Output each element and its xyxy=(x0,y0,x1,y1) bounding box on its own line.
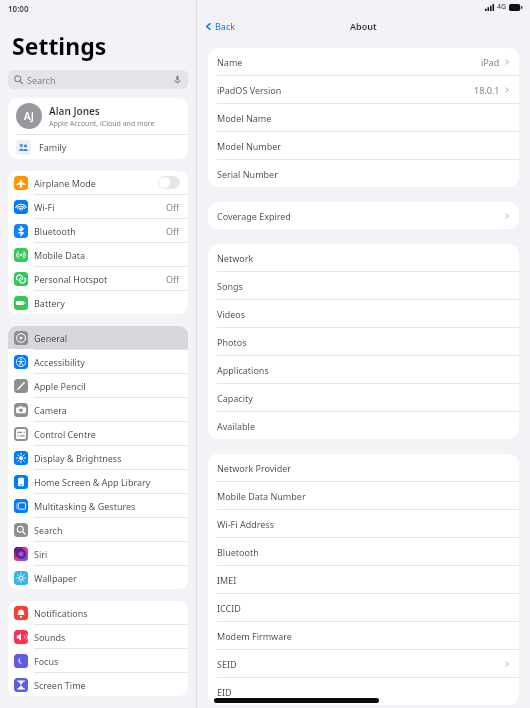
staticText: IMEI xyxy=(217,574,237,586)
staticText: Apple Account, iCloud and more xyxy=(49,119,155,129)
staticText: Model Name xyxy=(217,112,272,124)
staticText: 10:00 xyxy=(8,3,29,14)
staticText: Bluetooth xyxy=(34,225,76,237)
button[interactable]: Name xyxy=(208,48,519,75)
button[interactable]: Display & Brightness xyxy=(8,446,188,469)
button[interactable]: Mobile Data Number xyxy=(208,482,519,509)
staticText: iPad xyxy=(481,56,500,68)
button[interactable]: Wi-Fi Address xyxy=(208,510,519,537)
button[interactable]: Screen Time xyxy=(8,673,188,696)
staticText: Available xyxy=(217,420,255,432)
button[interactable]: Wi-Fi xyxy=(8,195,188,218)
staticText: Videos xyxy=(217,308,246,320)
staticText: Back xyxy=(215,20,236,32)
staticText: Model Number xyxy=(217,140,282,152)
button[interactable]: Battery xyxy=(8,291,188,314)
staticText: Wi-Fi xyxy=(34,201,55,213)
staticText: SEID xyxy=(217,658,237,670)
button[interactable]: Wallpaper xyxy=(8,566,188,589)
staticText: Focus xyxy=(34,655,59,667)
staticText: Camera xyxy=(34,404,67,416)
staticText: Applications xyxy=(217,364,269,376)
staticText: Coverage Expired xyxy=(217,210,291,222)
button[interactable]: Model Number xyxy=(208,132,519,159)
staticText: Modem Firmware xyxy=(217,630,292,642)
button[interactable]: Mobile Data xyxy=(8,243,188,266)
button[interactable]: Back xyxy=(197,14,242,38)
button[interactable]: Coverage Expired xyxy=(208,202,519,229)
staticText: Siri xyxy=(34,548,48,560)
staticText: Sounds xyxy=(34,631,66,643)
staticText: Multitasking & Gestures xyxy=(34,500,136,512)
button[interactable]: Serial Number xyxy=(208,160,519,187)
button[interactable]: Photos xyxy=(208,328,519,355)
staticText: Accessibility xyxy=(34,356,85,368)
button[interactable]: Model Name xyxy=(208,104,519,131)
staticText: Display & Brightness xyxy=(34,452,122,464)
staticText: Settings xyxy=(12,30,107,61)
staticText: Mobile Data Number xyxy=(217,490,306,502)
staticText: Alan Jones xyxy=(49,104,100,118)
staticText: Network xyxy=(217,252,254,264)
button[interactable]: Camera xyxy=(8,398,188,421)
button[interactable]: Network xyxy=(208,244,519,271)
staticText: AJ xyxy=(24,109,34,123)
button[interactable]: SEID xyxy=(208,650,519,677)
button[interactable]: Family xyxy=(8,135,188,159)
staticText: ICCID xyxy=(217,602,241,614)
button[interactable]: Control Centre xyxy=(8,422,188,445)
staticText: Screen Time xyxy=(34,679,86,691)
button[interactable]: Siri xyxy=(8,542,188,565)
staticText: Photos xyxy=(217,336,247,348)
button[interactable]: Search xyxy=(8,70,188,89)
button[interactable]: Accessibility xyxy=(8,350,188,373)
button[interactable]: Bluetooth xyxy=(8,219,188,242)
button[interactable]: ICCID xyxy=(208,594,519,621)
button[interactable]: Apple Pencil xyxy=(8,374,188,397)
button[interactable]: Songs xyxy=(208,272,519,299)
button[interactable]: Network Provider xyxy=(208,454,519,481)
button[interactable]: Multitasking & Gestures xyxy=(8,494,188,517)
button[interactable]: IMEI xyxy=(208,566,519,593)
button[interactable]: AJ xyxy=(8,98,188,134)
staticText: Capacity xyxy=(217,392,253,404)
staticText: Network Provider xyxy=(217,462,292,474)
staticText: Family xyxy=(39,141,67,153)
button[interactable]: Modem Firmware xyxy=(208,622,519,649)
staticText: Bluetooth xyxy=(217,546,259,558)
staticText: Search xyxy=(27,74,56,86)
staticText: Notifications xyxy=(34,607,88,619)
staticText: Personal Hotspot xyxy=(34,273,108,285)
staticText: Wi-Fi Address xyxy=(217,518,274,530)
staticText: Control Centre xyxy=(34,428,96,440)
staticText: Off xyxy=(166,201,180,213)
staticText: Wallpaper xyxy=(34,572,77,584)
button[interactable]: Airplane Mode xyxy=(8,171,188,194)
button[interactable]: General xyxy=(8,326,188,349)
staticText: About xyxy=(350,20,377,32)
button[interactable]: EID xyxy=(208,678,519,705)
button[interactable]: Sounds xyxy=(8,625,188,648)
staticText: 18.0.1 xyxy=(474,84,500,96)
button[interactable]: Personal Hotspot xyxy=(8,267,188,290)
button[interactable]: Applications xyxy=(208,356,519,383)
staticText: Battery xyxy=(34,297,65,309)
button[interactable]: Notifications xyxy=(8,601,188,624)
button[interactable]: Bluetooth xyxy=(208,538,519,565)
staticText: Airplane Mode xyxy=(34,177,96,189)
button[interactable]: iPadOS Version xyxy=(208,76,519,103)
button[interactable]: Focus xyxy=(8,649,188,672)
button[interactable]: Home Screen & App Library xyxy=(8,470,188,493)
staticText: Search xyxy=(34,524,63,536)
button[interactable] xyxy=(158,176,180,189)
staticText: Off xyxy=(166,273,180,285)
staticText: Songs xyxy=(217,280,243,292)
staticText: 4G xyxy=(497,2,507,12)
staticText: Serial Number xyxy=(217,168,278,180)
button[interactable]: Videos xyxy=(208,300,519,327)
staticText: Mobile Data xyxy=(34,249,86,261)
button[interactable]: Search xyxy=(8,518,188,541)
button[interactable]: Capacity xyxy=(208,384,519,411)
button[interactable]: Available xyxy=(208,412,519,439)
staticText: Name xyxy=(217,56,243,68)
